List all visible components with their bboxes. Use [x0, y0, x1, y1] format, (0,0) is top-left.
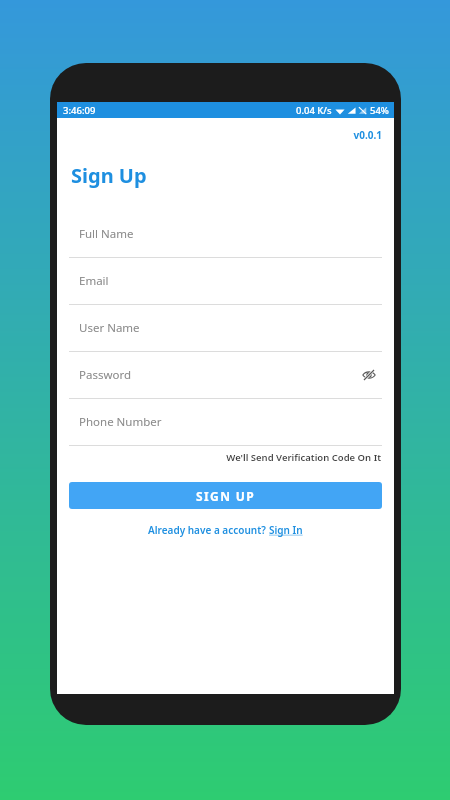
staticText: Phone Number — [79, 414, 162, 430]
button[interactable]: Email — [69, 258, 382, 305]
button[interactable]: User Name — [69, 305, 382, 352]
staticText: We'll Send Verification Code On It — [69, 451, 381, 464]
staticText: Already have a account? — [148, 523, 269, 537]
button[interactable]: SIGN UP — [69, 482, 382, 509]
staticText: User Name — [79, 320, 140, 336]
staticText: v0.0.1 — [69, 128, 382, 142]
button[interactable]: Password — [69, 352, 382, 399]
staticText: 54% — [370, 104, 389, 117]
staticText: 0.04 K/s — [296, 104, 332, 117]
button[interactable]: Already have a account? — [69, 523, 382, 537]
button[interactable]: Phone Number — [69, 399, 382, 446]
staticText: Email — [79, 273, 109, 289]
staticText: 3:46:09 — [63, 104, 96, 117]
staticText: Sign In — [269, 523, 303, 537]
staticText: Password — [79, 367, 132, 383]
button[interactable]: Full Name — [69, 211, 382, 258]
button[interactable]: Toggle password visibility — [359, 365, 379, 385]
staticText: Full Name — [79, 226, 134, 242]
staticText: SIGN UP — [196, 488, 256, 504]
staticText: Sign Up — [71, 162, 147, 189]
